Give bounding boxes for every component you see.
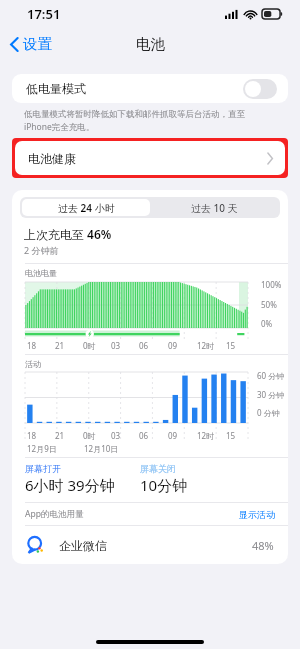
staticText: App的电池用量 bbox=[25, 508, 84, 520]
staticText: 15 bbox=[226, 430, 236, 441]
staticText: 12时 bbox=[197, 340, 215, 351]
staticText: 企业微信 bbox=[59, 538, 107, 553]
staticText: 21 bbox=[55, 340, 65, 351]
button[interactable]: Low Power Mode toggle bbox=[243, 79, 277, 99]
staticText: 21 bbox=[55, 430, 65, 441]
staticText: 设置 bbox=[23, 35, 52, 53]
staticText: 上次充电至 46% bbox=[24, 226, 112, 242]
staticText: 0时 bbox=[83, 340, 96, 351]
button[interactable]: 低电量模式 bbox=[12, 74, 288, 103]
staticText: 显示活动 bbox=[239, 509, 275, 520]
staticText: 过去 24 小时 bbox=[58, 201, 115, 215]
staticText: 12月9日 bbox=[27, 443, 57, 454]
staticText: 电池电量 bbox=[25, 268, 57, 278]
staticText: 0 分钟 bbox=[257, 407, 280, 418]
staticText: 18 bbox=[27, 340, 37, 351]
staticText: 60 分钟 bbox=[257, 370, 285, 381]
staticText: 12时 bbox=[197, 430, 215, 441]
staticText: 过去 10 天 bbox=[191, 201, 238, 215]
staticText: 03 bbox=[111, 430, 121, 441]
button[interactable]: 电池健康 bbox=[15, 141, 285, 175]
staticText: 18 bbox=[27, 430, 37, 441]
button[interactable]: 设置 bbox=[0, 31, 60, 57]
staticText: 15 bbox=[226, 340, 236, 351]
staticText: 活动 bbox=[25, 359, 41, 369]
staticText: 09 bbox=[168, 430, 178, 441]
staticText: 屏幕打开 bbox=[25, 463, 61, 474]
staticText: 2 分钟前 bbox=[24, 244, 59, 256]
staticText: 03 bbox=[111, 340, 121, 351]
button[interactable]: 过去 10 天 bbox=[150, 199, 278, 216]
staticText: 电池健康 bbox=[28, 151, 76, 166]
staticText: 100% bbox=[261, 279, 282, 290]
staticText: 12月10日 bbox=[84, 443, 119, 454]
staticText: 48% bbox=[252, 538, 274, 553]
button[interactable]: 过去 24 小时 bbox=[22, 199, 150, 216]
button[interactable]: 显示活动 bbox=[239, 509, 275, 520]
staticText: 30 分钟 bbox=[257, 389, 285, 400]
staticText: 17:51 bbox=[27, 5, 61, 23]
staticText: 0时 bbox=[83, 430, 96, 441]
staticText: 06 bbox=[139, 430, 149, 441]
staticText: 10分钟 bbox=[140, 475, 188, 495]
staticText: 0% bbox=[261, 318, 273, 329]
staticText: 06 bbox=[139, 340, 149, 351]
staticText: 09 bbox=[168, 340, 178, 351]
button[interactable]: 企业微信 bbox=[12, 526, 288, 564]
staticText: 屏幕关闭 bbox=[140, 463, 176, 474]
staticText: 电池 bbox=[136, 35, 165, 53]
staticText: 低电量模式将暂时降低如下载和邮件抓取等后台活动，直至 iPhone完全充电。 bbox=[24, 109, 245, 132]
staticText: 6小时 39分钟 bbox=[25, 475, 115, 495]
staticText: 低电量模式 bbox=[26, 81, 86, 96]
staticText: 50% bbox=[261, 299, 277, 310]
